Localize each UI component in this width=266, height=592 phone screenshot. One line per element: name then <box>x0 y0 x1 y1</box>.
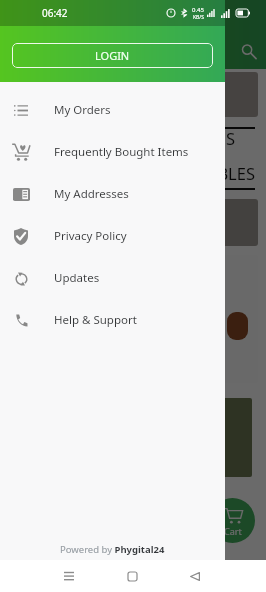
staticText: SHOP BY CATEGORIES <box>65 127 235 149</box>
button[interactable]: Privacy Policy <box>0 215 225 257</box>
button[interactable]: My Orders <box>0 89 225 131</box>
staticText: Help & Support <box>54 312 137 328</box>
staticText: My Orders <box>54 102 111 118</box>
staticText: LOGIN <box>95 48 130 63</box>
button[interactable] <box>14 312 35 340</box>
staticText: Updates <box>54 270 100 286</box>
button[interactable]: Frequently Bought Items <box>0 131 225 173</box>
button[interactable]: Search <box>236 38 258 60</box>
staticText: Frequently Bought Items <box>54 144 189 160</box>
button[interactable]: Recent apps <box>52 560 85 592</box>
button[interactable]: LOGIN <box>12 43 213 68</box>
button[interactable]: Home <box>116 560 149 592</box>
staticText: My Addresses <box>54 186 129 202</box>
button[interactable]: Updates <box>0 257 225 299</box>
button[interactable] <box>8 199 258 246</box>
button[interactable]: Cart <box>210 498 255 543</box>
staticText: Powered by Phygital24 <box>60 543 165 556</box>
button[interactable]: Help & Support <box>0 299 225 341</box>
staticText: Privacy Policy <box>54 228 127 244</box>
button[interactable] <box>132 398 252 477</box>
staticText: Cart <box>224 525 242 537</box>
button[interactable] <box>8 72 258 117</box>
staticText: 06:42 <box>42 6 68 20</box>
staticText: 0.45 <box>192 6 204 14</box>
button[interactable]: Back <box>178 560 211 592</box>
staticText: KB/S <box>193 14 204 21</box>
staticText: FRESH VEGETABLES <box>105 162 256 184</box>
button[interactable] <box>85 312 106 340</box>
button[interactable] <box>227 312 248 340</box>
button[interactable]: My Addresses <box>0 173 225 215</box>
button[interactable] <box>8 255 258 383</box>
